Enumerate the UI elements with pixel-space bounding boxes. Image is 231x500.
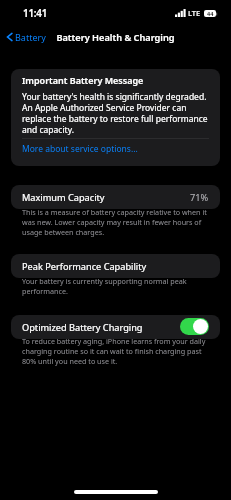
staticText: Peak Performance Capability [22, 260, 147, 273]
staticText: This is a measure of battery capacity re… [22, 207, 209, 237]
button[interactable]: More about service options... [22, 143, 138, 155]
staticText: 44 [207, 10, 214, 17]
staticText: Optimized Battery Charging [22, 321, 143, 334]
staticText: More about service options... [22, 143, 138, 155]
button[interactable]: Optimized Battery Charging [11, 315, 220, 339]
button[interactable]: Peak Performance Capability [11, 254, 220, 278]
button[interactable]: Battery [0, 31, 50, 43]
staticText: 11:41 [23, 7, 48, 20]
staticText: Important Battery Message [22, 74, 144, 86]
staticText: Your battery is currently supporting nor… [22, 276, 209, 296]
staticText: 71% [190, 191, 209, 204]
staticText: Maximum Capacity [22, 191, 105, 204]
button[interactable]: Maximum Capacity [11, 185, 220, 209]
staticText: To reduce battery aging, iPhone learns f… [22, 336, 209, 366]
button[interactable]: Optimized Battery Charging toggle [180, 318, 209, 335]
staticText: Battery Health & Charging [56, 31, 175, 44]
staticText: LTE [188, 8, 201, 18]
staticText: Your battery's health is significantly d… [22, 91, 209, 135]
staticText: Battery [15, 31, 46, 43]
